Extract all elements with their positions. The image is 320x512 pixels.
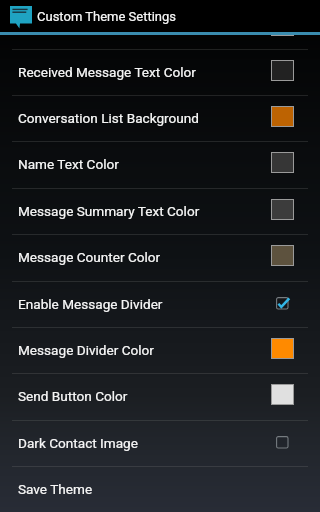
staticText: Conversation List Background — [18, 110, 271, 126]
button[interactable]: Message Counter Color — [0, 235, 320, 280]
button[interactable]: Dark Contact Image — [0, 421, 320, 466]
staticText: Message Divider Color — [18, 342, 271, 358]
staticText: Dark Contact Image — [18, 435, 275, 451]
other: Messaging — [10, 6, 32, 32]
button[interactable]: Name Text Color — [0, 142, 320, 187]
staticText: Message Summary Text Color — [18, 203, 271, 219]
button[interactable]: Message Divider Color — [0, 328, 320, 373]
staticText: Name Text Color — [18, 156, 271, 172]
staticText: Custom Theme Settings — [37, 9, 177, 24]
staticText: Received Message Text Color — [18, 64, 271, 80]
button[interactable]: Send Button Color — [0, 374, 320, 419]
button[interactable]: Message Summary Text Color — [0, 189, 320, 234]
staticText: Send Button Color — [18, 388, 271, 404]
button[interactable]: Enable Message Divider — [0, 282, 320, 327]
button[interactable]: Conversation List Background — [0, 96, 320, 141]
staticText: Message Counter Color — [18, 249, 271, 265]
button[interactable]: Save Theme — [0, 467, 320, 512]
staticText: Save Theme — [18, 481, 295, 497]
button[interactable]: Received Message Text Color — [0, 50, 320, 95]
staticText: Enable Message Divider — [18, 296, 275, 312]
